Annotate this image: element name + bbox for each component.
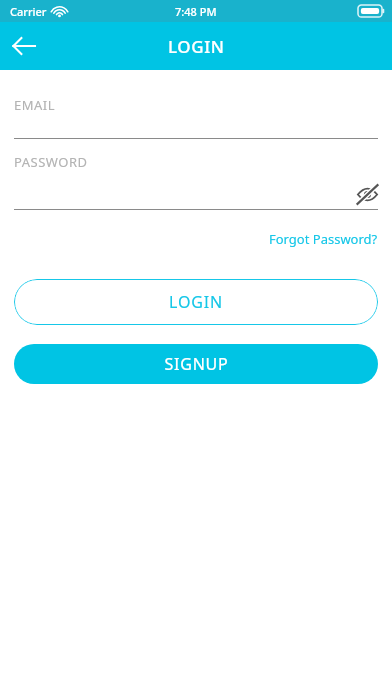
staticText: PASSWORD — [14, 153, 88, 171]
button[interactable]: LOGIN — [14, 279, 378, 325]
staticText: LOGIN — [169, 291, 223, 313]
button[interactable]: SIGNUP — [14, 344, 378, 384]
staticText: Carrier — [10, 4, 47, 19]
button[interactable]: Forgot Password? — [269, 230, 378, 248]
staticText: Forgot Password? — [269, 230, 378, 248]
staticText: 7:48 PM — [175, 4, 217, 19]
button[interactable]: Back — [0, 22, 48, 70]
staticText: SIGNUP — [164, 353, 229, 375]
button[interactable]: Show password — [352, 179, 382, 209]
staticText: EMAIL — [14, 96, 56, 114]
staticText: LOGIN — [168, 35, 225, 58]
